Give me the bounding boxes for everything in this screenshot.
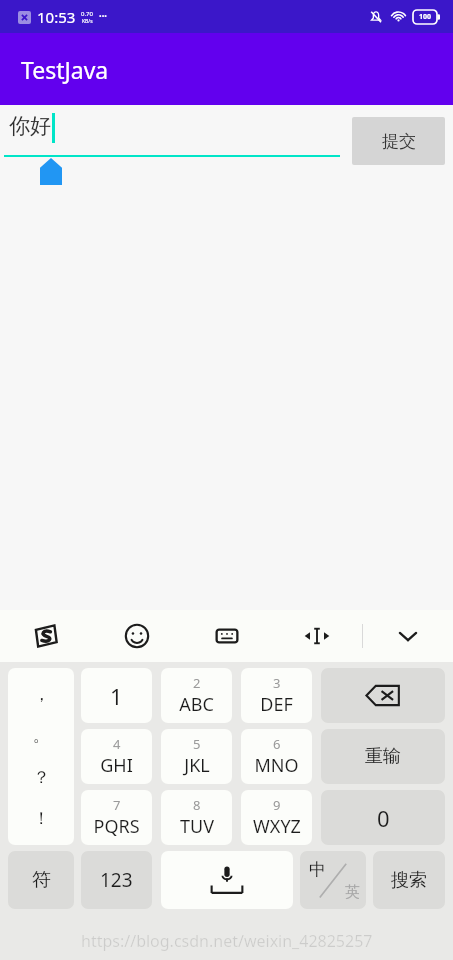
staticText: 0.70 bbox=[81, 10, 93, 18]
staticText: 1 bbox=[110, 681, 123, 711]
button[interactable]: 123 bbox=[81, 851, 152, 909]
button[interactable]: Backspace bbox=[321, 668, 445, 723]
staticText: 搜索 bbox=[391, 869, 427, 892]
staticText: ABC bbox=[179, 692, 214, 717]
staticText: 重输 bbox=[365, 745, 401, 768]
staticText: 0 bbox=[377, 803, 390, 833]
button[interactable]: Keyboard layout bbox=[182, 610, 272, 662]
button[interactable]: 提交 bbox=[352, 117, 445, 165]
staticText: ••• bbox=[99, 12, 107, 22]
staticText: 8 bbox=[193, 796, 201, 814]
staticText: 符 bbox=[32, 868, 51, 892]
staticText: JKL bbox=[184, 753, 210, 778]
staticText: TUV bbox=[180, 814, 214, 839]
staticText: 英 bbox=[345, 883, 360, 902]
staticText: 6 bbox=[273, 735, 281, 753]
staticText: WXYZ bbox=[253, 814, 301, 839]
button[interactable]: 9 bbox=[241, 790, 312, 845]
button[interactable]: 7 bbox=[81, 790, 152, 845]
staticText: 10:53 bbox=[37, 7, 76, 27]
staticText: 4 bbox=[113, 735, 121, 753]
button[interactable]: 4 bbox=[81, 729, 152, 784]
staticText: 5 bbox=[193, 735, 201, 753]
staticText: 3 bbox=[273, 674, 281, 692]
button[interactable]: Sogou input method bbox=[0, 610, 91, 662]
button[interactable]: 搜索 bbox=[373, 851, 445, 909]
button[interactable]: 重输 bbox=[321, 729, 445, 784]
button[interactable]: 5 bbox=[161, 729, 232, 784]
staticText: GHI bbox=[100, 753, 133, 778]
button[interactable]: 2 bbox=[161, 668, 232, 723]
staticText: 你好 bbox=[9, 113, 51, 139]
staticText: KB/s bbox=[82, 18, 93, 25]
staticText: 中 bbox=[309, 859, 326, 880]
staticText: PQRS bbox=[93, 814, 140, 839]
staticText: 7 bbox=[113, 796, 121, 814]
button[interactable]: 0 bbox=[321, 790, 445, 845]
staticText: https://blog.csdn.net/weixin_42825257 bbox=[81, 930, 373, 952]
button[interactable]: Hide keyboard bbox=[363, 610, 453, 662]
staticText: MNO bbox=[254, 753, 299, 778]
staticText: ， bbox=[33, 684, 50, 705]
button[interactable]: ， bbox=[8, 668, 74, 845]
button[interactable]: Move cursor bbox=[272, 610, 362, 662]
staticText: ！ bbox=[33, 808, 50, 829]
button[interactable]: 6 bbox=[241, 729, 312, 784]
staticText: 。 bbox=[33, 725, 50, 746]
staticText: ？ bbox=[33, 767, 50, 788]
button[interactable]: 3 bbox=[241, 668, 312, 723]
button[interactable]: 符 bbox=[8, 851, 74, 909]
staticText: TestJava bbox=[21, 54, 109, 85]
button[interactable]: Switch Chinese English bbox=[300, 851, 366, 909]
staticText: 100 bbox=[419, 12, 432, 22]
button[interactable]: Space, voice input bbox=[161, 851, 293, 909]
button[interactable]: 你好 bbox=[4, 111, 340, 157]
button[interactable]: 8 bbox=[161, 790, 232, 845]
staticText: 2 bbox=[193, 674, 201, 692]
staticText: DEF bbox=[260, 692, 293, 717]
staticText: 9 bbox=[273, 796, 281, 814]
button[interactable]: 1 bbox=[81, 668, 152, 723]
staticText: 提交 bbox=[382, 131, 416, 152]
staticText: 123 bbox=[100, 867, 133, 893]
button[interactable]: Emoji bbox=[91, 610, 182, 662]
